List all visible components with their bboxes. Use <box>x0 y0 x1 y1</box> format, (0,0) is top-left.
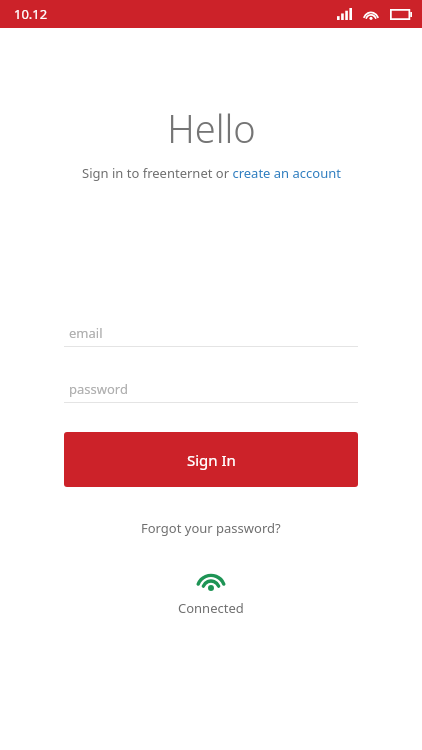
button[interactable]: Sign In <box>64 432 358 487</box>
staticText: Sign In <box>187 450 236 470</box>
button[interactable]: email <box>64 320 358 347</box>
other: Battery <box>390 9 412 20</box>
button[interactable]: Sign in to freenternet or create an acco… <box>82 164 341 182</box>
staticText: Hello <box>167 102 256 154</box>
staticText: 10.12 <box>14 5 48 23</box>
other: Cellular signal <box>337 8 352 20</box>
staticText: email <box>69 324 103 342</box>
staticText: Forgot your password? <box>141 519 281 537</box>
button[interactable]: Forgot your password? <box>129 515 293 541</box>
other: Connected to Wi-Fi <box>196 569 226 591</box>
staticText: Connected <box>178 599 244 617</box>
staticText: password <box>69 380 128 398</box>
button[interactable]: password <box>64 376 358 403</box>
other: Wi-Fi <box>363 8 379 20</box>
